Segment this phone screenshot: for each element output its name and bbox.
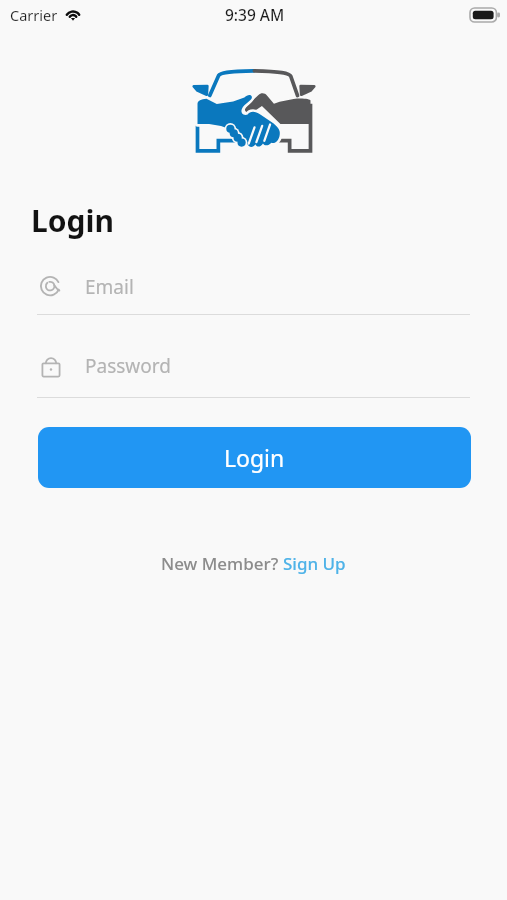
staticText: New Member?: [161, 552, 283, 575]
button[interactable]: Login: [38, 427, 471, 488]
staticText: Password: [85, 353, 171, 379]
other: Email: [40, 276, 62, 298]
staticText: Sign Up: [283, 552, 346, 575]
button[interactable]: New Member?: [0, 552, 507, 575]
button[interactable]: Email: [37, 269, 470, 305]
staticText: Email: [85, 274, 134, 300]
staticText: 9:39 AM: [225, 4, 285, 25]
staticText: Carrier: [10, 5, 58, 25]
other: Password: [40, 355, 62, 377]
staticText: Login: [31, 200, 114, 241]
staticText: Login: [224, 442, 285, 473]
button[interactable]: Password: [37, 348, 470, 384]
